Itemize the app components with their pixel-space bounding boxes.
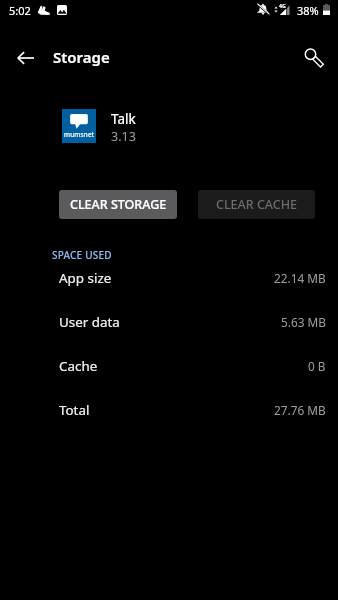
staticText: 3.13 xyxy=(111,128,136,145)
button[interactable]: CLEAR CACHE xyxy=(198,190,315,219)
staticText: Total xyxy=(59,401,90,419)
staticText: 38% xyxy=(297,3,319,18)
staticText: User data xyxy=(59,313,120,331)
button[interactable]: Search xyxy=(292,35,328,71)
button[interactable]: Back xyxy=(7,40,43,76)
staticText: 27.76 MB xyxy=(274,402,326,418)
staticText: Cache xyxy=(59,357,98,375)
staticText: App size xyxy=(59,269,112,287)
staticText: 5.63 MB xyxy=(281,314,326,330)
staticText: 0 B xyxy=(308,358,326,374)
staticText: CLEAR CACHE xyxy=(216,196,298,213)
button[interactable]: Cache xyxy=(0,344,338,388)
button[interactable]: User data xyxy=(0,300,338,344)
staticText: Talk xyxy=(111,110,136,128)
button[interactable]: App size xyxy=(0,256,338,300)
staticText: Storage xyxy=(53,47,110,67)
staticText: mumsnet xyxy=(64,130,95,139)
staticText: SPACE USED xyxy=(52,248,112,262)
button[interactable]: CLEAR STORAGE xyxy=(59,190,177,219)
staticText: 5:02 xyxy=(9,3,31,18)
button[interactable]: Total xyxy=(0,388,338,432)
staticText: 22.14 MB xyxy=(274,270,326,286)
staticText: 4G xyxy=(279,2,286,9)
staticText: CLEAR STORAGE xyxy=(70,196,167,213)
